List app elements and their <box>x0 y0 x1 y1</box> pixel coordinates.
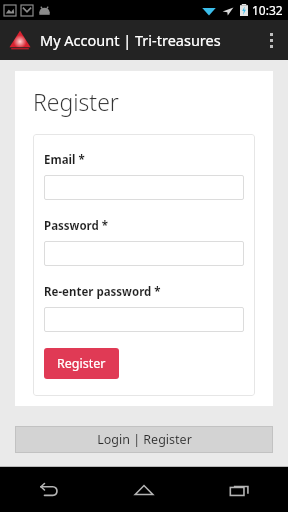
staticText: 10:32 <box>252 2 283 18</box>
staticText: My Account | Tri-treasures <box>40 30 221 50</box>
button[interactable] <box>44 241 244 266</box>
staticText: Re-enter password * <box>44 284 161 300</box>
button[interactable]: Home <box>96 467 192 512</box>
button[interactable]: Recents <box>192 467 288 512</box>
staticText: Register <box>33 86 119 117</box>
staticText: Password * <box>44 218 109 234</box>
button[interactable]: More options <box>254 20 288 60</box>
staticText: Register <box>57 355 106 372</box>
staticText: Email * <box>44 152 85 168</box>
button[interactable] <box>44 307 244 332</box>
button[interactable] <box>44 175 244 200</box>
button[interactable]: Login | Register <box>15 426 273 453</box>
button[interactable]: Register <box>44 348 119 379</box>
button[interactable]: Back <box>0 467 96 512</box>
staticText: Login | Register <box>97 431 192 448</box>
